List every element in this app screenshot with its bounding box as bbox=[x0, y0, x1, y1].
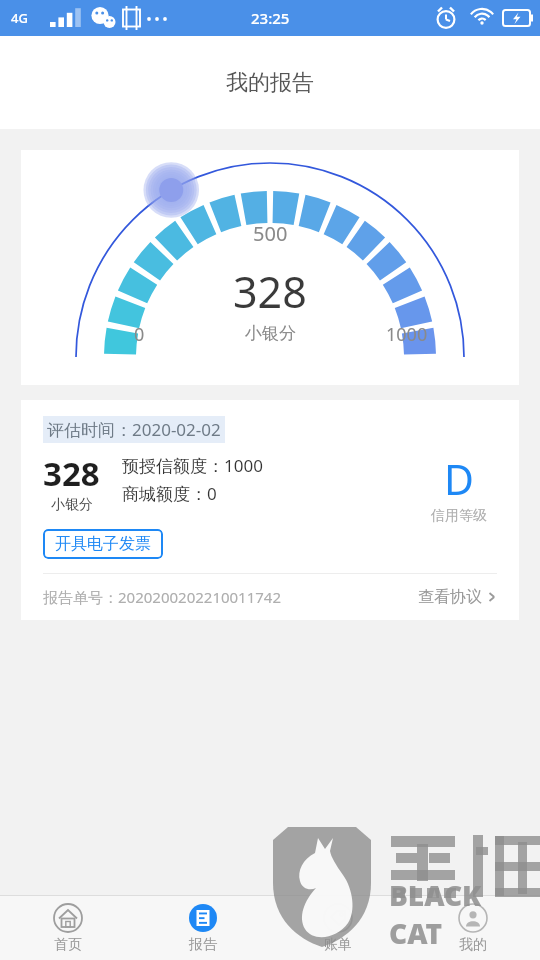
staticText: 23:25 bbox=[251, 8, 290, 28]
button[interactable]: 账单 bbox=[270, 896, 405, 960]
staticText: 商城额度：0 bbox=[122, 482, 217, 505]
staticText: 4G bbox=[11, 9, 28, 27]
button[interactable]: 我的 bbox=[405, 896, 540, 960]
staticText: D bbox=[444, 451, 474, 507]
button[interactable]: 报告单号：2020200202210011742 bbox=[43, 574, 497, 620]
staticText: 328 bbox=[233, 262, 307, 321]
staticText: 小银分 bbox=[51, 496, 93, 514]
staticText: 查看协议 bbox=[418, 587, 482, 607]
staticText: 首页 bbox=[54, 936, 82, 954]
staticText: 我的 bbox=[459, 936, 487, 954]
staticText: 0 bbox=[134, 322, 145, 347]
staticText: 账单 bbox=[324, 936, 352, 954]
staticText: 我的报告 bbox=[226, 69, 314, 97]
button[interactable]: 报告 bbox=[135, 896, 270, 960]
staticText: 信用等级 bbox=[431, 507, 487, 525]
staticText: 报告单号：2020200202210011742 bbox=[43, 587, 282, 607]
staticText: 1000 bbox=[386, 322, 428, 347]
staticText: BLACK CAT bbox=[389, 876, 540, 952]
staticText: 评估时间：2020-02-02 bbox=[47, 418, 221, 441]
button[interactable]: 首页 bbox=[0, 896, 135, 960]
staticText: 报告 bbox=[189, 936, 217, 954]
staticText: 500 bbox=[253, 220, 288, 247]
staticText: 小银分 bbox=[245, 323, 296, 344]
staticText: 328 bbox=[43, 451, 100, 496]
staticText: 预授信额度：1000 bbox=[122, 454, 263, 477]
staticText: 开具电子发票 bbox=[55, 534, 151, 554]
button[interactable]: 开具电子发票 bbox=[43, 529, 163, 559]
